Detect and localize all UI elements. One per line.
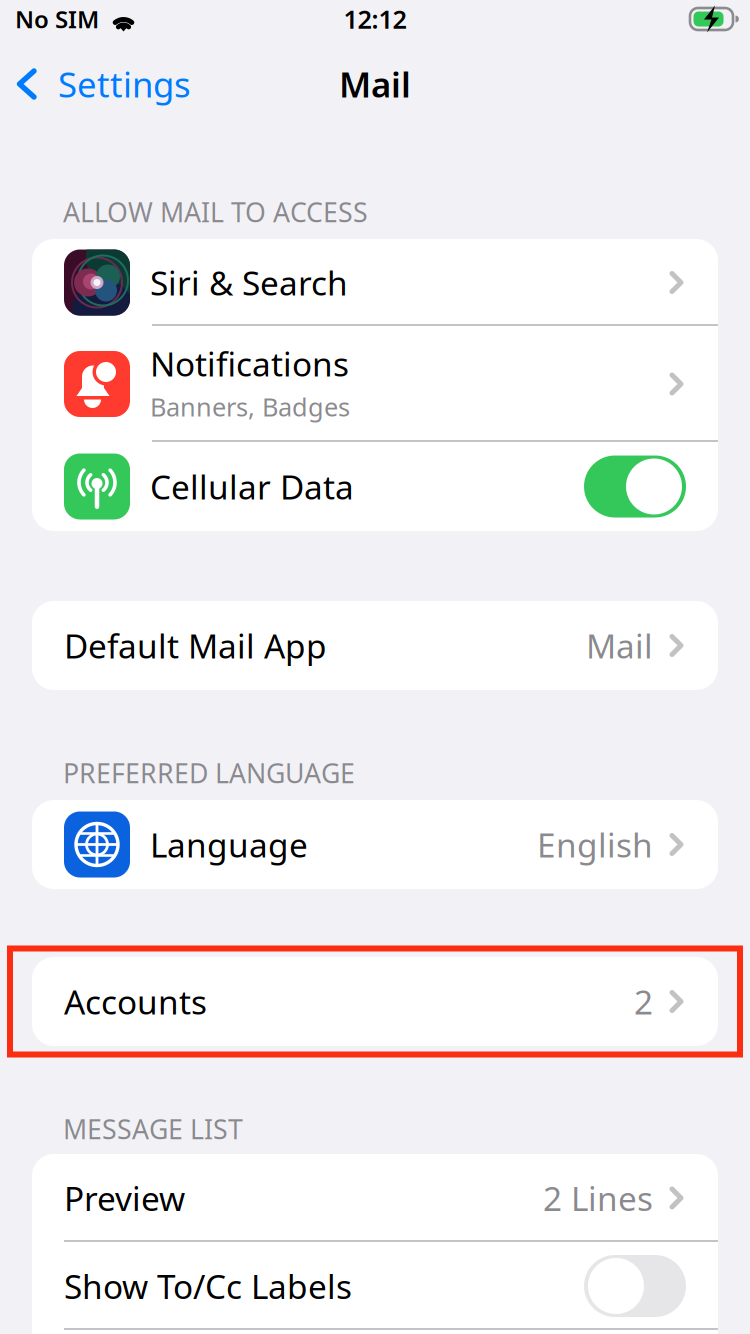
button[interactable]: Notifications: [32, 326, 718, 442]
staticText: Mail: [586, 623, 653, 668]
staticText: Settings: [58, 61, 191, 107]
staticText: 12:12: [343, 2, 406, 36]
staticText: MESSAGE LIST: [63, 1111, 243, 1147]
button[interactable]: Siri & Search: [32, 239, 718, 326]
button[interactable]: Settings: [0, 41, 207, 107]
staticText: Accounts: [64, 979, 207, 1024]
staticText: Banners, Badges: [150, 390, 350, 423]
staticText: No SIM: [15, 3, 99, 35]
staticText: Siri & Search: [150, 260, 348, 305]
staticText: Mail: [339, 61, 411, 107]
staticText: ALLOW MAIL TO ACCESS: [63, 194, 368, 230]
button[interactable]: Cellular Data: [32, 442, 718, 531]
staticText: Notifications: [150, 341, 349, 386]
button[interactable]: Language: [32, 800, 718, 889]
staticText: Language: [150, 822, 308, 867]
button[interactable]: Show To/Cc Labels: [32, 1242, 718, 1330]
staticText: Show To/Cc Labels: [64, 1264, 352, 1308]
button[interactable]: Preview: [32, 1154, 718, 1242]
staticText: 2: [634, 979, 653, 1024]
staticText: Default Mail App: [64, 623, 327, 668]
staticText: PREFERRED LANGUAGE: [63, 755, 355, 791]
staticText: Cellular Data: [150, 464, 354, 509]
button[interactable]: Accounts: [32, 957, 718, 1046]
staticText: Preview: [64, 1176, 185, 1220]
staticText: English: [537, 822, 653, 867]
staticText: 2 Lines: [543, 1176, 653, 1220]
button[interactable]: Default Mail App: [32, 601, 718, 690]
